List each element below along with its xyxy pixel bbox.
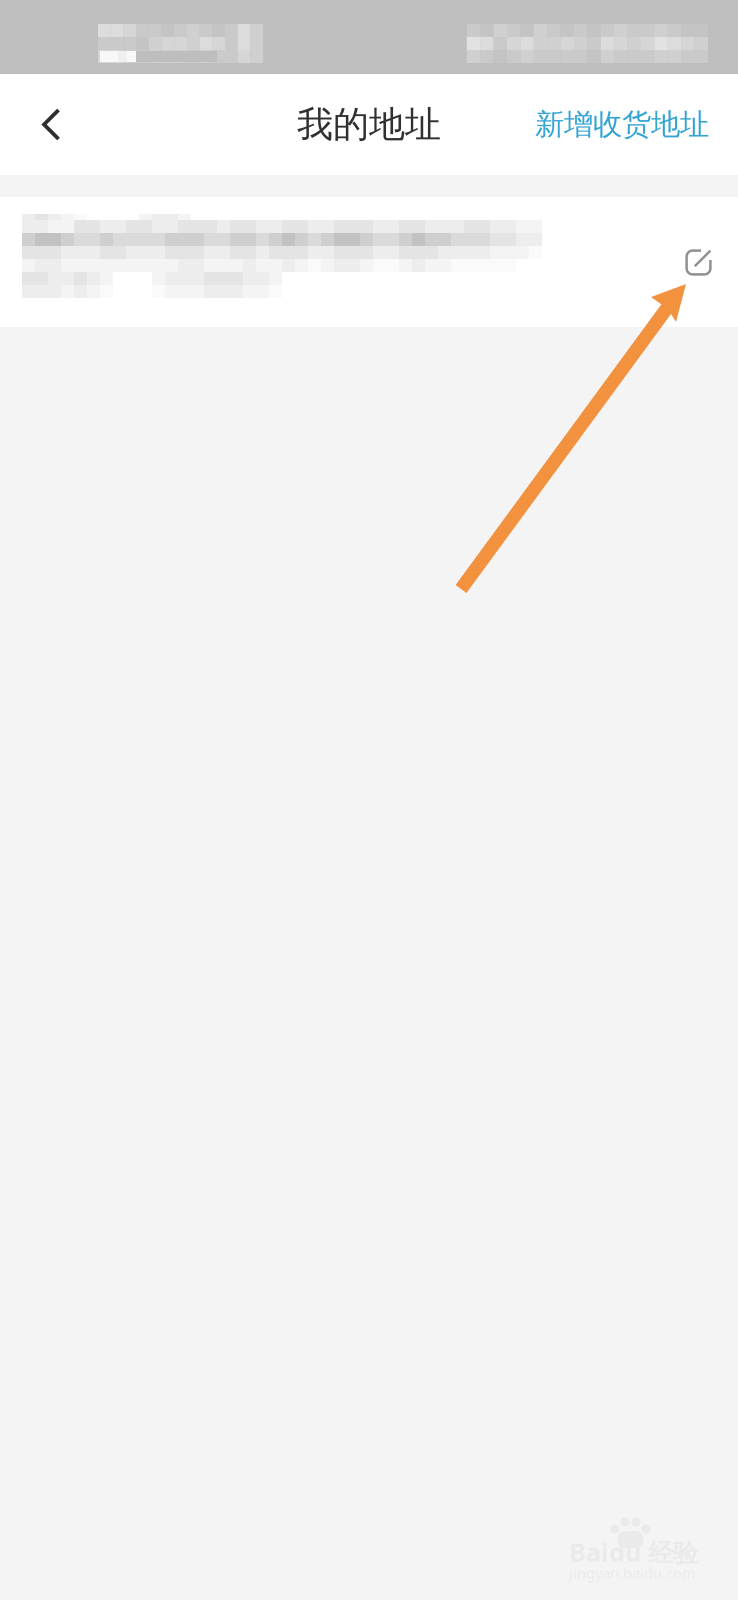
staticText: Baidu 经验 bbox=[569, 1535, 698, 1569]
button[interactable] bbox=[0, 197, 738, 327]
button[interactable]: 返回 bbox=[0, 74, 120, 175]
staticText: 我的地址 bbox=[297, 102, 441, 147]
button[interactable]: 新增收货地址 bbox=[498, 74, 738, 175]
staticText: 新增收货地址 bbox=[535, 106, 709, 142]
